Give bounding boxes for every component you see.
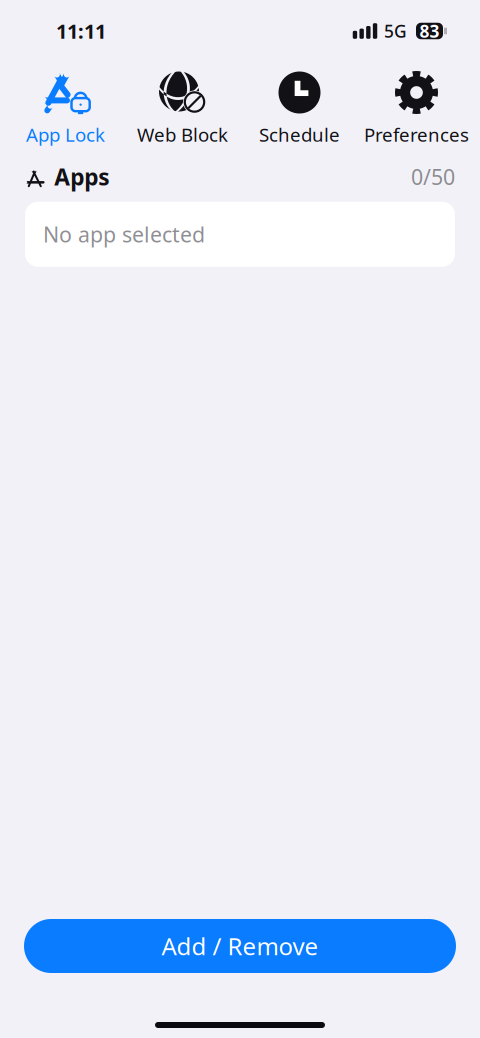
staticText: 5G [384,19,407,42]
staticText: Preferences [364,122,469,147]
staticText: Apps [54,162,109,192]
staticText: 0/50 [411,163,455,191]
staticText: 11:11 [56,18,106,44]
button[interactable]: Preferences [358,69,475,147]
button[interactable]: App Lock [7,69,124,147]
staticText: No app selected [43,220,205,248]
button[interactable]: Add / Remove [24,919,456,973]
staticText: App Lock [26,122,105,147]
staticText: 83 [419,19,439,42]
staticText: Add / Remove [161,930,318,962]
staticText: Schedule [259,122,340,147]
staticText: Web Block [137,122,228,147]
button[interactable]: Schedule [241,69,358,147]
button[interactable]: Web Block [124,69,241,147]
